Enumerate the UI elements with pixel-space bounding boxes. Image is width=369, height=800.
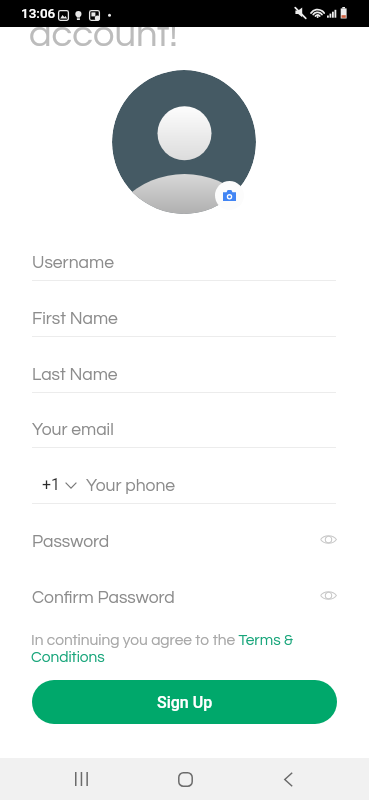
button[interactable]: In continuing you agree to the Terms & C… xyxy=(31,632,303,665)
button[interactable]: Show password xyxy=(314,525,342,553)
button[interactable]: Your email xyxy=(32,405,336,448)
button[interactable]: Confirm Password xyxy=(32,573,336,616)
staticText: Your phone xyxy=(86,477,176,495)
button[interactable]: +1 xyxy=(36,471,80,497)
button[interactable]: Show password xyxy=(314,581,342,609)
button[interactable]: Recents xyxy=(45,758,117,800)
staticText: Last Name xyxy=(32,366,118,384)
staticText: First Name xyxy=(32,310,118,328)
staticText: Username xyxy=(32,254,114,272)
button[interactable]: First Name xyxy=(32,294,336,337)
button[interactable]: Change profile photo xyxy=(215,181,244,210)
button[interactable]: Username xyxy=(32,238,336,281)
staticText: 13:06 xyxy=(21,5,56,21)
staticText: Your email xyxy=(32,421,114,439)
button[interactable]: Home xyxy=(149,758,221,800)
staticText: Sign Up xyxy=(157,693,213,712)
staticText: +1 xyxy=(42,475,61,494)
staticText: Password xyxy=(32,533,110,551)
staticText: Confirm Password xyxy=(32,589,175,607)
button[interactable]: Last Name xyxy=(32,350,336,393)
staticText: account! xyxy=(29,15,178,54)
button[interactable]: Sign Up xyxy=(32,680,337,724)
staticText: In continuing you agree to the Terms & C… xyxy=(31,632,303,665)
button[interactable]: Password xyxy=(32,517,336,560)
button[interactable]: Back xyxy=(252,758,324,800)
